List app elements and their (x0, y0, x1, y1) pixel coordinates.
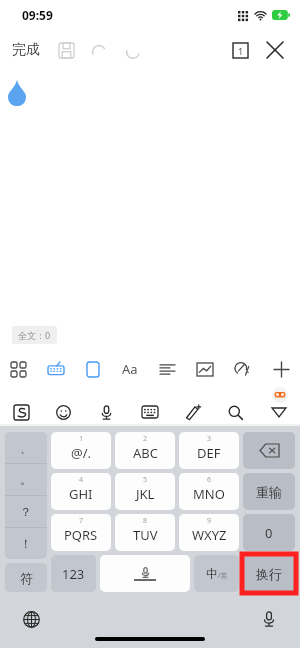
staticText: 2 (143, 434, 148, 444)
button[interactable]: Image (186, 352, 224, 386)
button[interactable]: Language (18, 606, 44, 632)
staticText: ABC (133, 444, 158, 462)
button[interactable]: ！ (5, 528, 47, 559)
staticText: 重输 (256, 484, 282, 500)
button[interactable]: 重输 (243, 473, 295, 510)
staticText: 。 (20, 472, 32, 487)
button[interactable]: Close (260, 35, 290, 65)
staticText: 中 (206, 566, 218, 581)
staticText: TUV (133, 526, 158, 544)
staticText: 3 (207, 434, 212, 444)
staticText: 符 (20, 570, 33, 586)
button[interactable]: ？ (5, 496, 47, 527)
button[interactable]: 全文：0 (12, 326, 57, 344)
button[interactable]: Voice (85, 398, 128, 426)
button[interactable]: 完成 (0, 33, 50, 67)
button[interactable]: Page (74, 352, 111, 386)
button[interactable]: Handwriting (224, 352, 262, 386)
button[interactable]: 4 (51, 473, 111, 510)
button[interactable]: Redo (116, 33, 150, 67)
button[interactable]: Undo (82, 33, 116, 67)
button[interactable]: 6 (179, 473, 239, 510)
staticText: MNO (193, 485, 225, 503)
button[interactable]: Search (214, 398, 257, 426)
button[interactable]: 9 (179, 514, 239, 551)
staticText: 09:59 (22, 7, 53, 23)
button[interactable]: Emoji (42, 398, 85, 426)
button[interactable]: 0 (243, 514, 295, 551)
button[interactable]: 2 (115, 432, 175, 469)
staticText: 6 (207, 475, 212, 485)
button[interactable]: 、 (5, 432, 47, 463)
button[interactable]: Backspace (243, 432, 295, 469)
staticText: 9 (207, 516, 212, 526)
button[interactable]: Apps (0, 352, 37, 386)
staticText: 5 (143, 475, 148, 485)
staticText: WXYZ (192, 526, 227, 544)
button[interactable]: 5 (115, 473, 175, 510)
button[interactable]: Add (262, 352, 300, 386)
staticText: ！ (20, 536, 32, 551)
staticText: 换行 (256, 566, 282, 582)
staticText: GHI (69, 485, 93, 503)
button[interactable]: 1 (51, 432, 111, 469)
button[interactable]: 中 (194, 555, 239, 592)
button[interactable]: 123 (51, 555, 96, 592)
staticText: 4 (79, 475, 84, 485)
staticText: 7 (79, 516, 84, 526)
button[interactable]: Sogou (0, 398, 42, 426)
button[interactable]: 8 (115, 514, 175, 551)
button[interactable]: Space (100, 555, 190, 592)
button[interactable]: Save (50, 34, 82, 66)
button[interactable]: 换行 (243, 555, 295, 592)
staticText: 全文：0 (18, 329, 51, 341)
button[interactable]: Keyboard (128, 398, 171, 426)
staticText: 8 (143, 516, 148, 526)
button[interactable]: Collapse (257, 398, 300, 426)
button[interactable]: Keyboard (37, 352, 74, 386)
staticText: 、 (20, 440, 32, 455)
button[interactable]: 符 (5, 563, 47, 592)
button[interactable]: Handwrite (171, 398, 214, 426)
staticText: 0 (265, 524, 273, 542)
staticText: 1 (238, 45, 244, 57)
button[interactable]: Voice input (256, 606, 282, 632)
button[interactable]: 。 (5, 464, 47, 495)
staticText: 完成 (12, 41, 40, 59)
staticText: JKL (136, 485, 155, 503)
button[interactable]: Font (111, 352, 148, 386)
button[interactable]: 1 (226, 36, 254, 64)
staticText: @/. (71, 444, 92, 462)
staticText: /英 (218, 571, 228, 581)
button[interactable]: 7 (51, 514, 111, 551)
staticText: Aa (122, 360, 138, 378)
staticText: PQRS (64, 526, 98, 544)
staticText: 123 (62, 565, 85, 583)
staticText: ？ (20, 504, 32, 519)
staticText: 1 (79, 434, 84, 444)
staticText: DEF (197, 444, 221, 462)
button[interactable]: Align (148, 352, 186, 386)
button[interactable]: 3 (179, 432, 239, 469)
